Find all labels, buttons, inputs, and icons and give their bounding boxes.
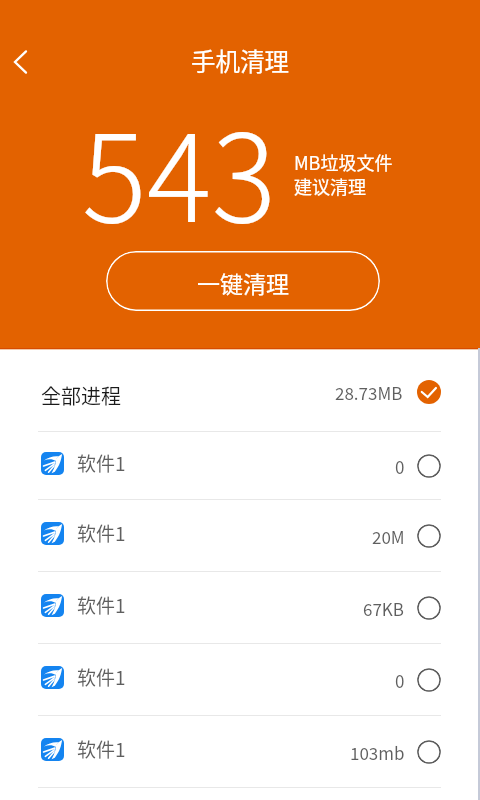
button[interactable]: Deselect all bbox=[417, 380, 441, 404]
button[interactable]: 软件1 bbox=[0, 716, 480, 788]
staticText: 20M bbox=[372, 524, 405, 549]
button[interactable]: Select bbox=[417, 596, 441, 620]
button[interactable]: Select bbox=[417, 668, 441, 692]
button[interactable]: 软件1 bbox=[0, 572, 480, 644]
staticText: 软件1 bbox=[77, 519, 126, 547]
staticText: 28.73MB bbox=[335, 380, 403, 405]
staticText: 543 bbox=[82, 82, 277, 257]
staticText: 全部进程 bbox=[41, 381, 121, 410]
staticText: 软件1 bbox=[77, 449, 126, 477]
staticText: 0 bbox=[395, 454, 405, 479]
staticText: 67KB bbox=[363, 596, 405, 621]
staticText: 手机清理 bbox=[0, 43, 480, 78]
button[interactable]: Select bbox=[417, 740, 441, 764]
button[interactable]: 全部进程 bbox=[0, 350, 480, 432]
staticText: 软件1 bbox=[77, 591, 126, 619]
staticText: 一键清理 bbox=[197, 266, 289, 299]
staticText: 软件1 bbox=[77, 735, 126, 763]
staticText: MB垃圾文件 建议清理 bbox=[294, 149, 393, 199]
button[interactable]: Select bbox=[417, 454, 441, 478]
button[interactable]: 软件1 bbox=[0, 432, 480, 500]
staticText: 软件1 bbox=[77, 663, 126, 691]
button[interactable]: 软件1 bbox=[0, 644, 480, 716]
button[interactable]: Back bbox=[0, 40, 46, 86]
staticText: 103mb bbox=[350, 740, 405, 765]
button[interactable]: Select bbox=[417, 524, 441, 548]
staticText: 0 bbox=[395, 668, 405, 693]
button[interactable]: 软件1 bbox=[0, 500, 480, 572]
button[interactable]: 一键清理 bbox=[106, 251, 380, 311]
